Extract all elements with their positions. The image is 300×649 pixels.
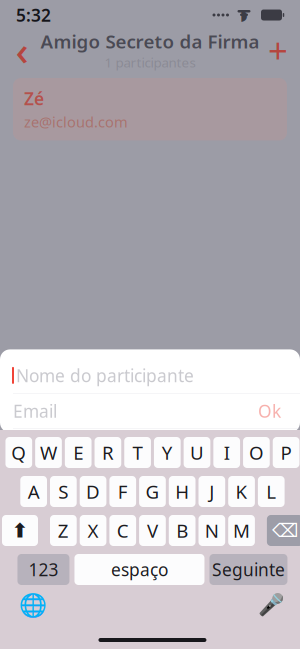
staticText: +	[268, 27, 288, 73]
button[interactable]: V	[139, 515, 166, 546]
button[interactable]: Dictate	[254, 591, 288, 619]
button[interactable]: Y	[154, 437, 181, 468]
button[interactable]: X	[80, 515, 106, 546]
staticText: K	[235, 479, 247, 504]
button[interactable]: Z	[50, 515, 77, 546]
staticText: Y	[162, 440, 173, 465]
button[interactable]: J	[198, 476, 225, 507]
button[interactable]: A	[20, 476, 47, 507]
staticText: Zé	[24, 87, 44, 110]
button[interactable]: S	[50, 476, 77, 507]
staticText: G	[145, 479, 159, 504]
button[interactable]: Shift	[2, 515, 38, 546]
staticText: Email	[13, 399, 57, 422]
button[interactable]: Zé	[13, 78, 287, 140]
staticText: ze@icloud.com	[24, 112, 128, 131]
staticText: M	[233, 518, 250, 543]
staticText: ◗	[240, 7, 248, 23]
staticText: H	[175, 479, 189, 504]
staticText: I	[224, 440, 230, 465]
staticText: V	[147, 518, 158, 543]
button[interactable]: E	[65, 437, 92, 468]
staticText: R	[102, 440, 114, 465]
staticText: Seguinte	[212, 558, 285, 581]
staticText: ‹	[15, 23, 28, 76]
staticText: F	[118, 479, 128, 504]
staticText: S	[58, 479, 68, 504]
button[interactable]: C	[109, 515, 136, 546]
button[interactable]: H	[169, 476, 195, 507]
staticText: J	[209, 479, 214, 504]
staticText: B	[176, 518, 188, 543]
staticText: T	[133, 440, 143, 465]
staticText: 1 participantes	[104, 53, 195, 71]
staticText: X	[87, 518, 98, 543]
button[interactable]: D	[80, 476, 106, 507]
button[interactable]: O	[243, 437, 270, 468]
staticText: Ok	[258, 399, 281, 422]
staticText: 123	[28, 558, 58, 581]
button[interactable]: I	[213, 437, 240, 468]
button[interactable]: Delete	[267, 515, 300, 546]
button[interactable]: Change keyboard	[16, 591, 50, 619]
button[interactable]: K	[228, 476, 255, 507]
button[interactable]: 123	[17, 554, 69, 585]
staticText: N	[205, 518, 219, 543]
button[interactable]: F	[109, 476, 136, 507]
staticText: espaço	[111, 558, 168, 581]
staticText: 🌐	[19, 592, 47, 618]
staticText: Z	[58, 518, 69, 543]
staticText: A	[28, 479, 40, 504]
button[interactable]: G	[139, 476, 166, 507]
button[interactable]: R	[95, 437, 121, 468]
staticText: Nome do participante	[16, 364, 194, 387]
staticText: L	[266, 479, 276, 504]
button[interactable]: Ok	[252, 395, 287, 426]
staticText: U	[190, 440, 204, 465]
staticText: ⌫	[272, 520, 298, 541]
staticText: 🎤	[258, 593, 285, 617]
staticText: D	[86, 479, 100, 504]
staticText: C	[117, 518, 129, 543]
button[interactable]: U	[184, 437, 210, 468]
button[interactable]: L	[258, 476, 285, 507]
staticText: Amigo Secreto da Firma	[40, 29, 259, 54]
button[interactable]: P	[273, 437, 299, 468]
button[interactable]: N	[198, 515, 225, 546]
button[interactable]: Add participant	[256, 31, 300, 69]
button[interactable]: Seguinte	[209, 554, 287, 585]
button[interactable]: T	[124, 437, 151, 468]
staticText: E	[73, 440, 83, 465]
button[interactable]: M	[228, 515, 255, 546]
button[interactable]: B	[169, 515, 195, 546]
button[interactable]: espaço	[74, 554, 204, 585]
staticText: W	[40, 440, 57, 465]
button[interactable]: Q	[5, 437, 32, 468]
staticText: ⬆	[11, 519, 28, 542]
staticText: Q	[11, 440, 26, 465]
staticText: O	[249, 440, 264, 465]
staticText: 5:32	[16, 3, 51, 26]
button[interactable]: Back	[0, 31, 44, 69]
button[interactable]: W	[35, 437, 62, 468]
staticText: P	[281, 440, 292, 465]
